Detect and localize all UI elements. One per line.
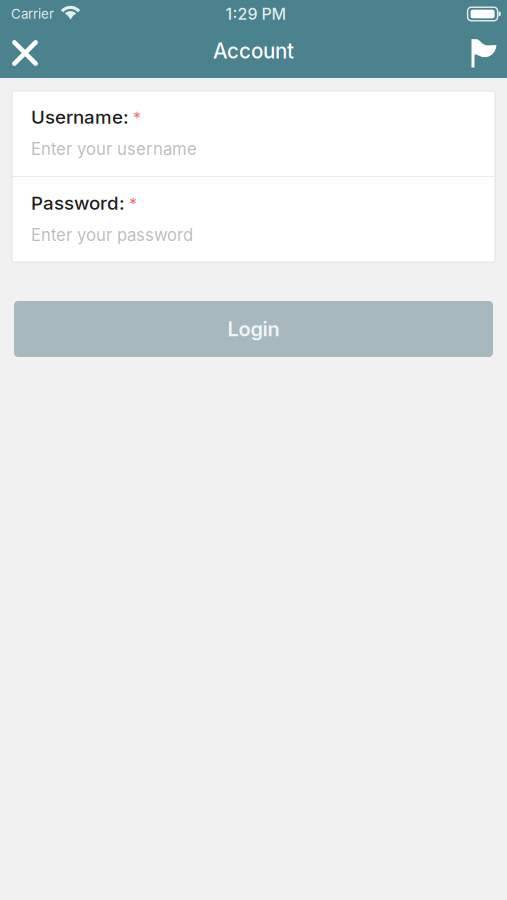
button[interactable]: Close: [0, 28, 50, 78]
staticText: Password:: [31, 192, 125, 214]
staticText: 1:29 PM: [225, 4, 286, 24]
staticText: Account: [213, 38, 294, 63]
staticText: Carrier: [11, 6, 54, 22]
staticText: *: [129, 194, 137, 214]
staticText: Username:: [31, 106, 129, 128]
staticText: *: [133, 108, 141, 128]
staticText: Login: [227, 317, 279, 341]
button[interactable]: Login: [14, 301, 493, 357]
button[interactable]: Flag: [466, 28, 502, 78]
staticText: Enter your username: [31, 139, 197, 159]
staticText: Enter your password: [31, 225, 193, 245]
